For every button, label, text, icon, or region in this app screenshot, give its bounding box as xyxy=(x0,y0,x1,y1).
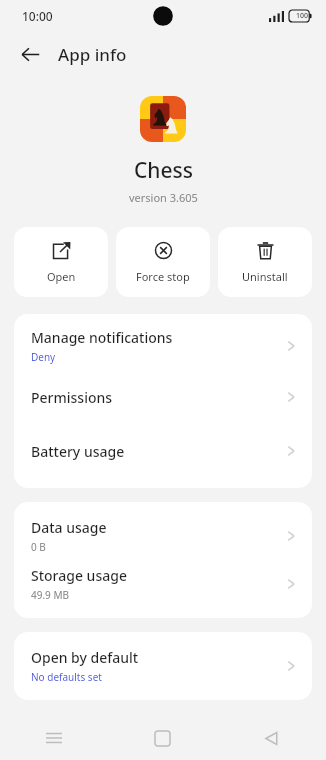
button[interactable]: Open by default xyxy=(14,642,312,690)
staticText: 49.9 MB xyxy=(31,588,70,602)
button[interactable]: Home xyxy=(108,716,217,760)
staticText: Permissions xyxy=(31,388,113,407)
button[interactable]: Open xyxy=(14,227,108,297)
staticText: Storage usage xyxy=(31,566,127,585)
staticText: Open xyxy=(47,269,76,284)
staticText: Manage notifications xyxy=(31,328,173,347)
staticText: Open by default xyxy=(31,648,139,667)
button[interactable]: Storage usage xyxy=(14,560,312,608)
button[interactable]: Manage notifications xyxy=(14,322,312,370)
staticText: 0 B xyxy=(31,540,46,554)
button[interactable]: Permissions xyxy=(14,370,312,424)
button[interactable]: Force stop xyxy=(116,227,210,297)
staticText: 100 xyxy=(296,11,309,21)
staticText: Force stop xyxy=(136,269,190,284)
button[interactable]: Battery usage xyxy=(14,424,312,478)
button[interactable]: Back xyxy=(217,716,326,760)
button[interactable]: Back xyxy=(10,34,50,74)
staticText: Data usage xyxy=(31,518,107,537)
button[interactable]: Recent apps xyxy=(0,716,108,760)
button[interactable]: Uninstall xyxy=(218,227,312,297)
staticText: version 3.605 xyxy=(129,190,198,205)
staticText: Uninstall xyxy=(242,269,288,284)
staticText: Deny xyxy=(31,350,56,364)
staticText: 10:00 xyxy=(22,8,53,24)
staticText: Chess xyxy=(134,156,193,185)
staticText: No defaults set xyxy=(31,670,102,684)
staticText: App info xyxy=(58,43,127,66)
button[interactable]: Data usage xyxy=(14,512,312,560)
staticText: Battery usage xyxy=(31,442,125,461)
